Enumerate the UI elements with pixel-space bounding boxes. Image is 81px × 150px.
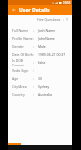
staticText: : — [33, 44, 38, 49]
staticText: false — [38, 60, 70, 65]
button[interactable]: City/Area — [8, 82, 72, 90]
staticText: Australia — [38, 92, 70, 97]
staticText: 1 — [66, 17, 68, 21]
staticText: : — [33, 52, 38, 57]
button[interactable]: Is DOB Correct — [8, 58, 72, 66]
staticText: : — [33, 60, 38, 65]
staticText: City/Area — [12, 84, 33, 89]
staticText: Profile Name — [12, 36, 33, 41]
staticText: Full Name — [12, 28, 33, 33]
staticText: Is DOB Correct — [12, 58, 33, 66]
button[interactable]: Gender — [8, 42, 72, 50]
staticText: : — [33, 28, 38, 33]
button[interactable]: Country — [8, 90, 72, 98]
button[interactable]: Navigate up — [8, 5, 19, 15]
button[interactable]: Free Questions — [8, 15, 72, 23]
staticText: : — [33, 84, 38, 89]
button[interactable]: Vedic Sign — [8, 66, 72, 74]
staticText: Josh Name — [38, 28, 70, 33]
staticText: User Details — [19, 7, 50, 14]
staticText: Age — [12, 76, 33, 81]
staticText: Free Questions — [37, 17, 61, 21]
staticText: Gender — [12, 44, 33, 49]
staticText: Country — [12, 92, 33, 97]
button[interactable]: Full Name — [8, 26, 72, 34]
staticText: : — [33, 68, 38, 73]
staticText: Male — [38, 44, 70, 49]
button[interactable]: Date Of Birth — [8, 50, 72, 58]
staticText: Date Of Birth — [12, 52, 33, 57]
button[interactable]: Profile Name — [8, 34, 72, 42]
staticText: Sydney — [38, 84, 70, 89]
staticText: Vedic Sign — [12, 68, 33, 73]
button[interactable]: Age — [8, 74, 72, 82]
staticText: 10:53 — [63, 1, 71, 5]
staticText: : — [33, 92, 38, 97]
staticText: : — [63, 17, 64, 21]
staticText: : — [33, 36, 38, 41]
staticText: 30 — [38, 76, 70, 81]
staticText: JohnName — [38, 36, 70, 41]
staticText: : — [33, 76, 38, 81]
staticText: 1989-06-21 00:37 — [38, 52, 70, 57]
